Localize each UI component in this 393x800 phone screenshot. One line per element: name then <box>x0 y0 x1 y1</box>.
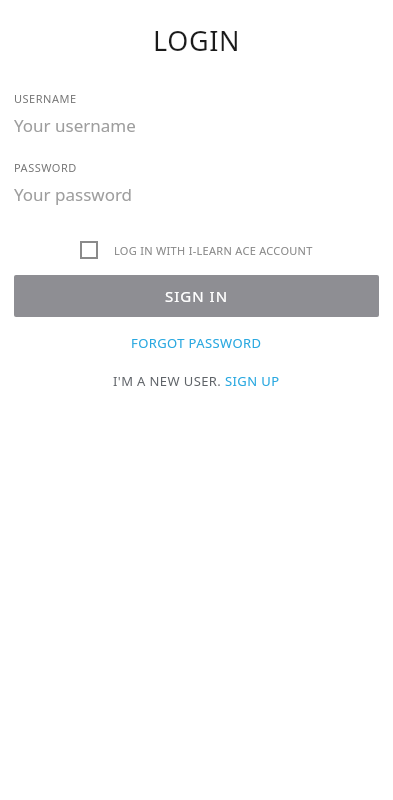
staticText: FORGOT PASSWORD <box>131 334 262 352</box>
staticText: I'M A NEW USER. SIGN UP <box>113 372 280 390</box>
staticText: SIGN IN <box>165 286 229 306</box>
button[interactable]: FORGOT PASSWORD <box>123 330 270 356</box>
button[interactable]: SIGN IN <box>14 275 379 317</box>
staticText: LOG IN WITH I-LEARN ACE ACCOUNT <box>114 243 313 258</box>
button[interactable]: Your username <box>0 113 393 137</box>
button[interactable]: Your password <box>0 182 393 206</box>
staticText: LOGIN <box>0 22 393 59</box>
staticText: Your password <box>14 183 133 206</box>
button[interactable]: I'M A NEW USER. SIGN UP <box>105 368 288 394</box>
other: Log in with I-Learn ACE account checkbox <box>80 241 98 259</box>
button[interactable]: Log in with I-Learn ACE account checkbox <box>76 237 317 263</box>
staticText: USERNAME <box>14 91 77 106</box>
staticText: Your username <box>14 114 136 137</box>
staticText: PASSWORD <box>14 160 77 175</box>
